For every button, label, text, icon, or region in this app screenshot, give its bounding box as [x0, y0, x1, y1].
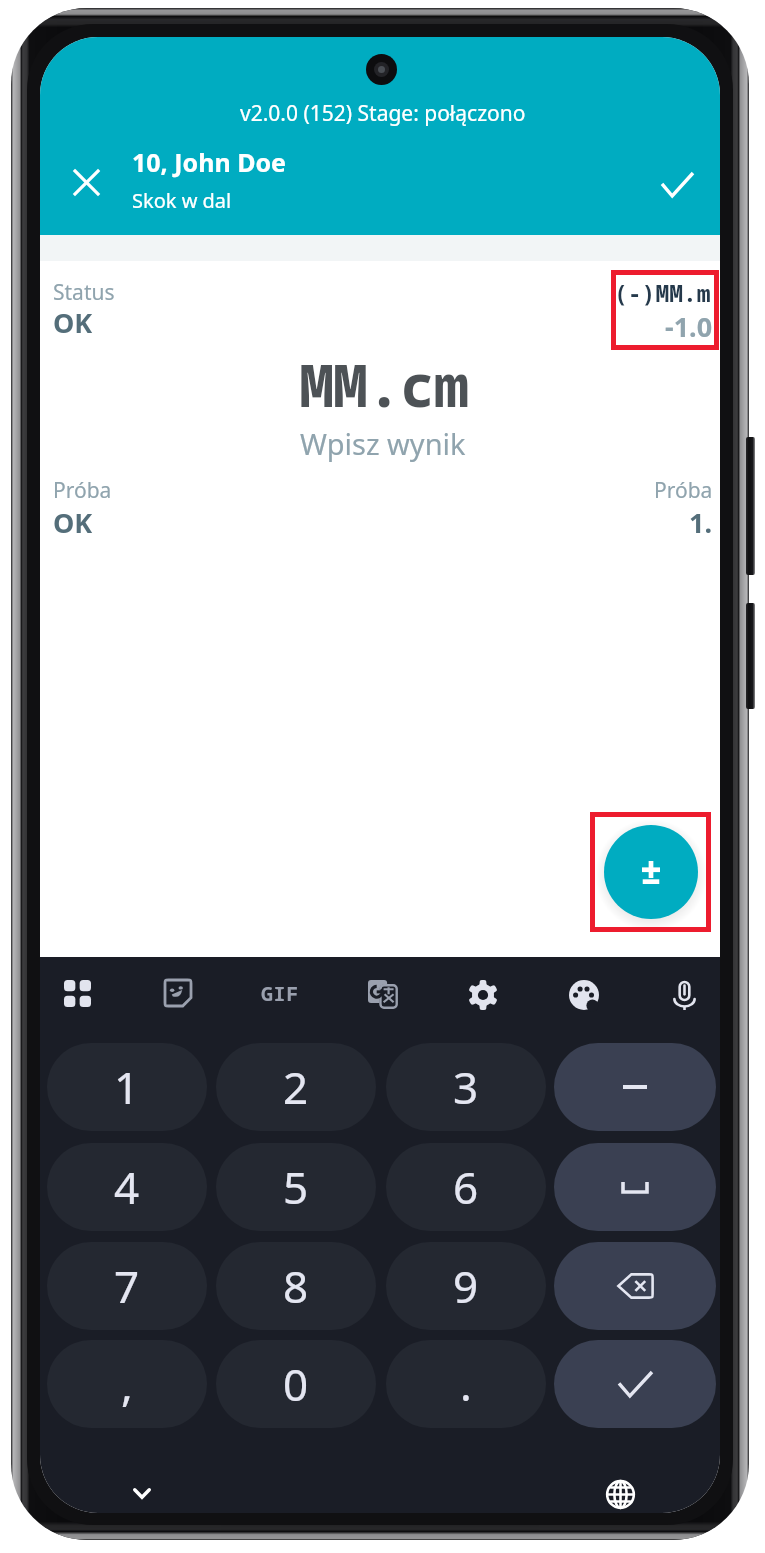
button[interactable]: space [554, 1143, 716, 1231]
button[interactable]: Confirm [654, 161, 700, 207]
staticText: Próba [53, 476, 112, 505]
staticText: MM.cm [299, 344, 468, 424]
staticText: 5 [283, 1157, 309, 1217]
staticText: OK [53, 504, 93, 541]
button[interactable]: Settings [455, 967, 511, 1023]
staticText: 0 [283, 1354, 309, 1414]
staticText: 8 [283, 1256, 309, 1316]
button[interactable]: . [386, 1340, 546, 1428]
button[interactable]: 3 [386, 1043, 546, 1131]
staticText: 2 [283, 1057, 309, 1117]
button[interactable]: 2 [216, 1043, 376, 1131]
staticText: Skok w dal [132, 187, 232, 214]
staticText: 10, John Doe [132, 145, 286, 179]
staticText: -1.0 [665, 308, 713, 345]
button[interactable]: minus [554, 1043, 716, 1131]
button[interactable]: 0 [216, 1340, 376, 1428]
button[interactable]: enter [554, 1340, 716, 1428]
button[interactable]: 4 [47, 1143, 207, 1231]
staticText: . [460, 1354, 472, 1414]
staticText: 9 [453, 1256, 479, 1316]
button[interactable]: Apps [49, 965, 105, 1021]
staticText: Próba [654, 476, 713, 505]
staticText: OK [53, 304, 93, 341]
staticText: , [121, 1354, 133, 1414]
button[interactable]: Change language [596, 1470, 644, 1513]
button[interactable]: Translate [354, 966, 410, 1022]
staticText: 6 [453, 1157, 479, 1217]
button[interactable]: backspace [554, 1242, 716, 1330]
button[interactable]: GIF [252, 965, 308, 1021]
button[interactable]: , [47, 1340, 207, 1428]
button[interactable]: 5 [216, 1143, 376, 1231]
staticText: 3 [453, 1057, 479, 1117]
button[interactable]: 1 [47, 1043, 207, 1131]
button[interactable]: 9 [386, 1242, 546, 1330]
staticText: (-)MM.m [614, 277, 711, 308]
button[interactable]: 6 [386, 1143, 546, 1231]
button[interactable]: Toggle plus minus sign [604, 825, 698, 919]
button[interactable]: Stickers [150, 965, 206, 1021]
staticText: GIF [261, 980, 299, 1007]
staticText: 1 [114, 1057, 140, 1117]
button[interactable]: Close [62, 158, 111, 207]
button[interactable]: 8 [216, 1242, 376, 1330]
staticText: Status [53, 278, 115, 307]
button[interactable]: Voice input [656, 967, 712, 1023]
button[interactable]: 7 [47, 1242, 207, 1330]
staticText: 7 [114, 1256, 140, 1316]
staticText: 4 [114, 1157, 140, 1217]
staticText: v2.0.0 (152) Stage: połączono [240, 99, 526, 128]
button[interactable]: Theme [556, 967, 612, 1023]
button[interactable]: Hide keyboard [118, 1469, 166, 1513]
staticText: 1. [689, 504, 713, 541]
staticText: Wpisz wynik [300, 424, 466, 463]
